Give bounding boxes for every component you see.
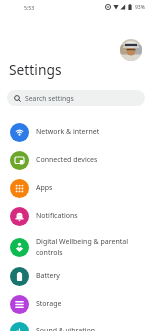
staticText: Storage bbox=[36, 299, 62, 309]
staticText: Search settings bbox=[25, 94, 74, 103]
staticText: Battery bbox=[36, 271, 60, 281]
button[interactable]: Sound & vibration bbox=[0, 317, 152, 331]
button[interactable]: Connected devices bbox=[0, 146, 152, 174]
button[interactable]: Battery bbox=[0, 262, 152, 290]
staticText: Notifications bbox=[36, 211, 78, 221]
button[interactable] bbox=[120, 39, 142, 61]
staticText: Network & internet bbox=[36, 127, 100, 137]
staticText: Apps bbox=[36, 183, 53, 193]
staticText: Connected devices bbox=[36, 155, 98, 165]
staticText: Digital Wellbeing & parental controls bbox=[36, 237, 129, 257]
button[interactable]: Storage bbox=[0, 290, 152, 318]
staticText: Settings bbox=[9, 60, 62, 79]
staticText: 93% bbox=[135, 4, 145, 11]
button[interactable]: Network & internet bbox=[0, 118, 152, 146]
button[interactable]: Search settings bbox=[7, 90, 145, 106]
staticText: 5:53 bbox=[24, 4, 35, 11]
staticText: Sound & vibration bbox=[36, 326, 96, 331]
button[interactable]: Digital Wellbeing & parental controls bbox=[0, 230, 152, 264]
button[interactable]: Notifications bbox=[0, 202, 152, 230]
button[interactable]: Apps bbox=[0, 174, 152, 202]
